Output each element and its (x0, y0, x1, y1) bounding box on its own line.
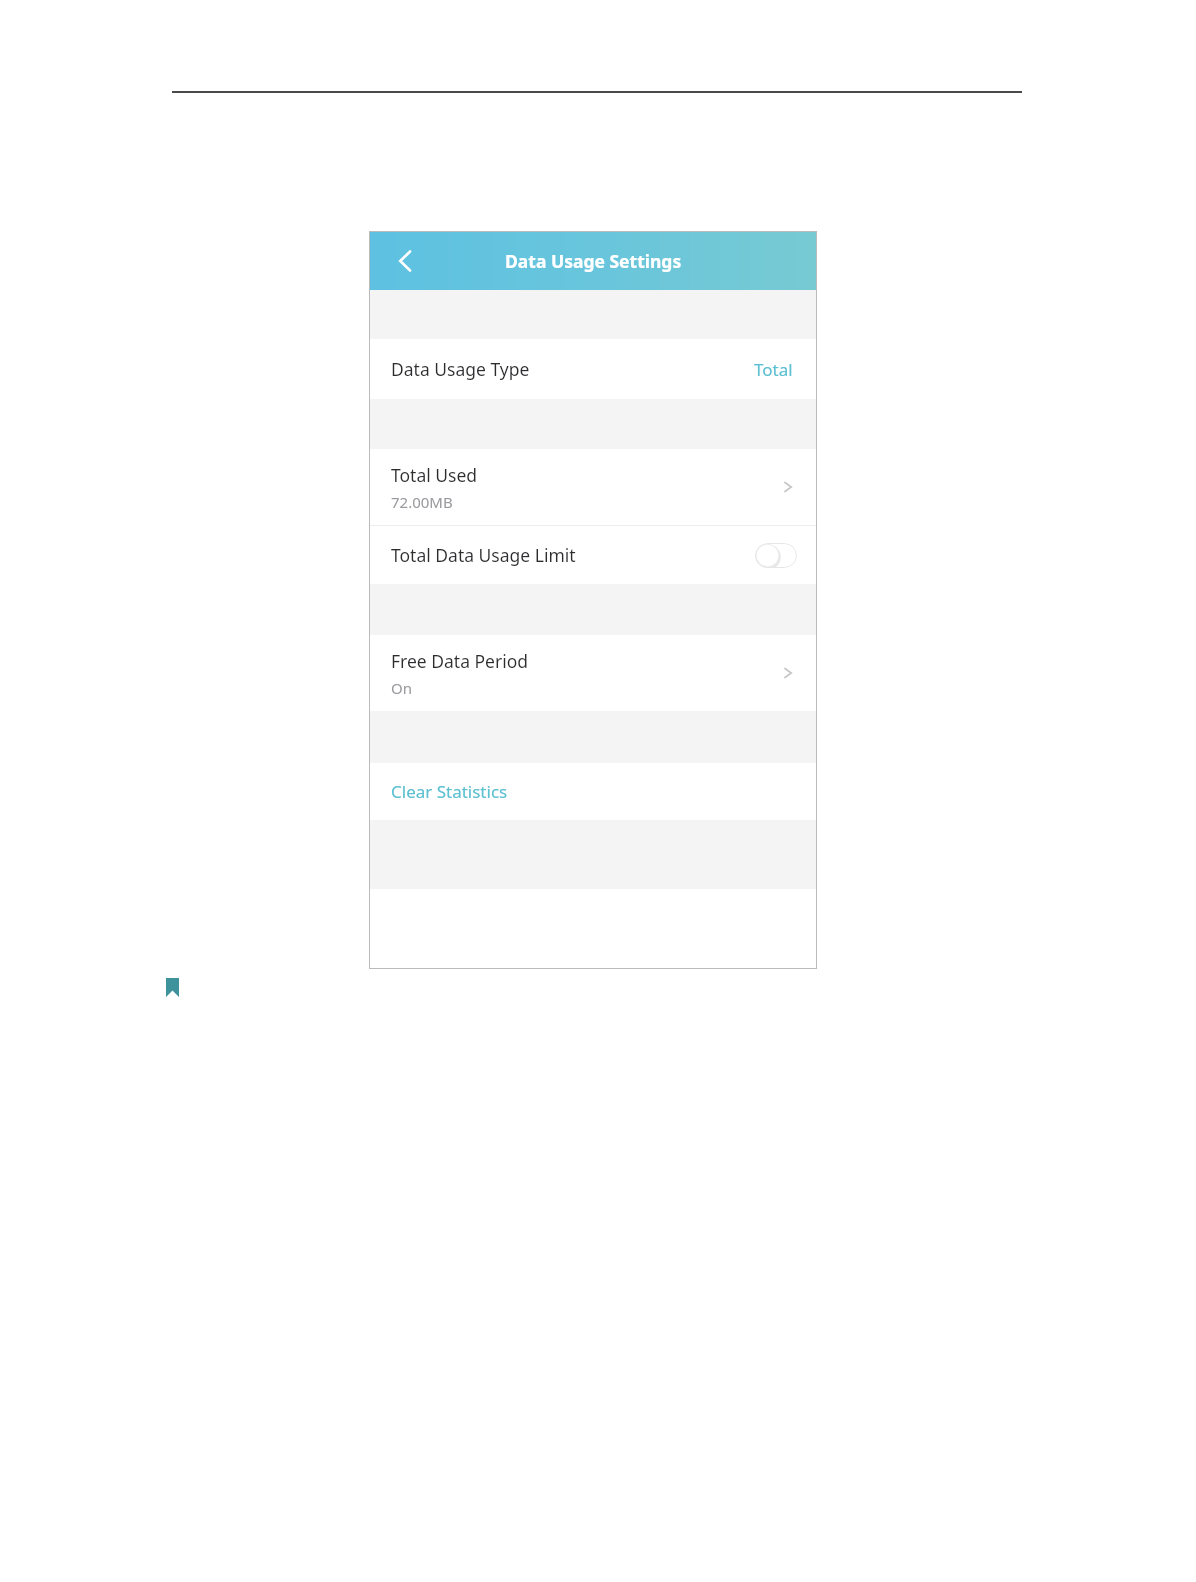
staticText: Total (754, 358, 793, 381)
staticText: 72.00MB (391, 492, 453, 512)
staticText: Total Data Usage Limit (391, 543, 576, 567)
button[interactable]: Data Usage Type (369, 339, 817, 399)
button[interactable]: Clear Statistics (369, 763, 817, 820)
button[interactable]: Total Data Usage Limit toggle (755, 543, 797, 568)
button[interactable]: Total Used (369, 449, 817, 525)
button[interactable]: Back (389, 244, 423, 278)
staticText: Free Data Period (391, 649, 529, 673)
staticText: On (391, 678, 412, 698)
button[interactable]: Free Data Period (369, 635, 817, 711)
staticText: Data Usage Settings (505, 249, 682, 273)
staticText: Data Usage Type (391, 357, 530, 381)
staticText: Total Used (391, 463, 478, 487)
staticText: Clear Statistics (391, 780, 508, 803)
